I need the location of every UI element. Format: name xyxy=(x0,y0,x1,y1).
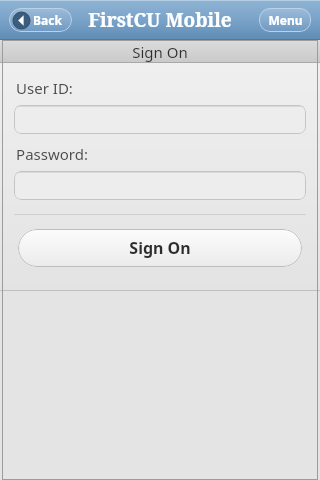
staticText: User ID: xyxy=(16,78,73,98)
button[interactable]: Back xyxy=(9,8,72,32)
button[interactable] xyxy=(14,105,306,134)
button[interactable] xyxy=(14,171,306,200)
staticText: FirstCU Mobile xyxy=(88,7,232,33)
staticText: Back xyxy=(33,12,62,28)
staticText: Password: xyxy=(16,144,88,164)
staticText: Menu xyxy=(268,12,303,28)
button[interactable]: Sign On xyxy=(18,229,302,267)
staticText: Sign On xyxy=(129,237,191,259)
staticText: Sign On xyxy=(132,42,188,62)
button[interactable]: Menu xyxy=(259,8,311,32)
